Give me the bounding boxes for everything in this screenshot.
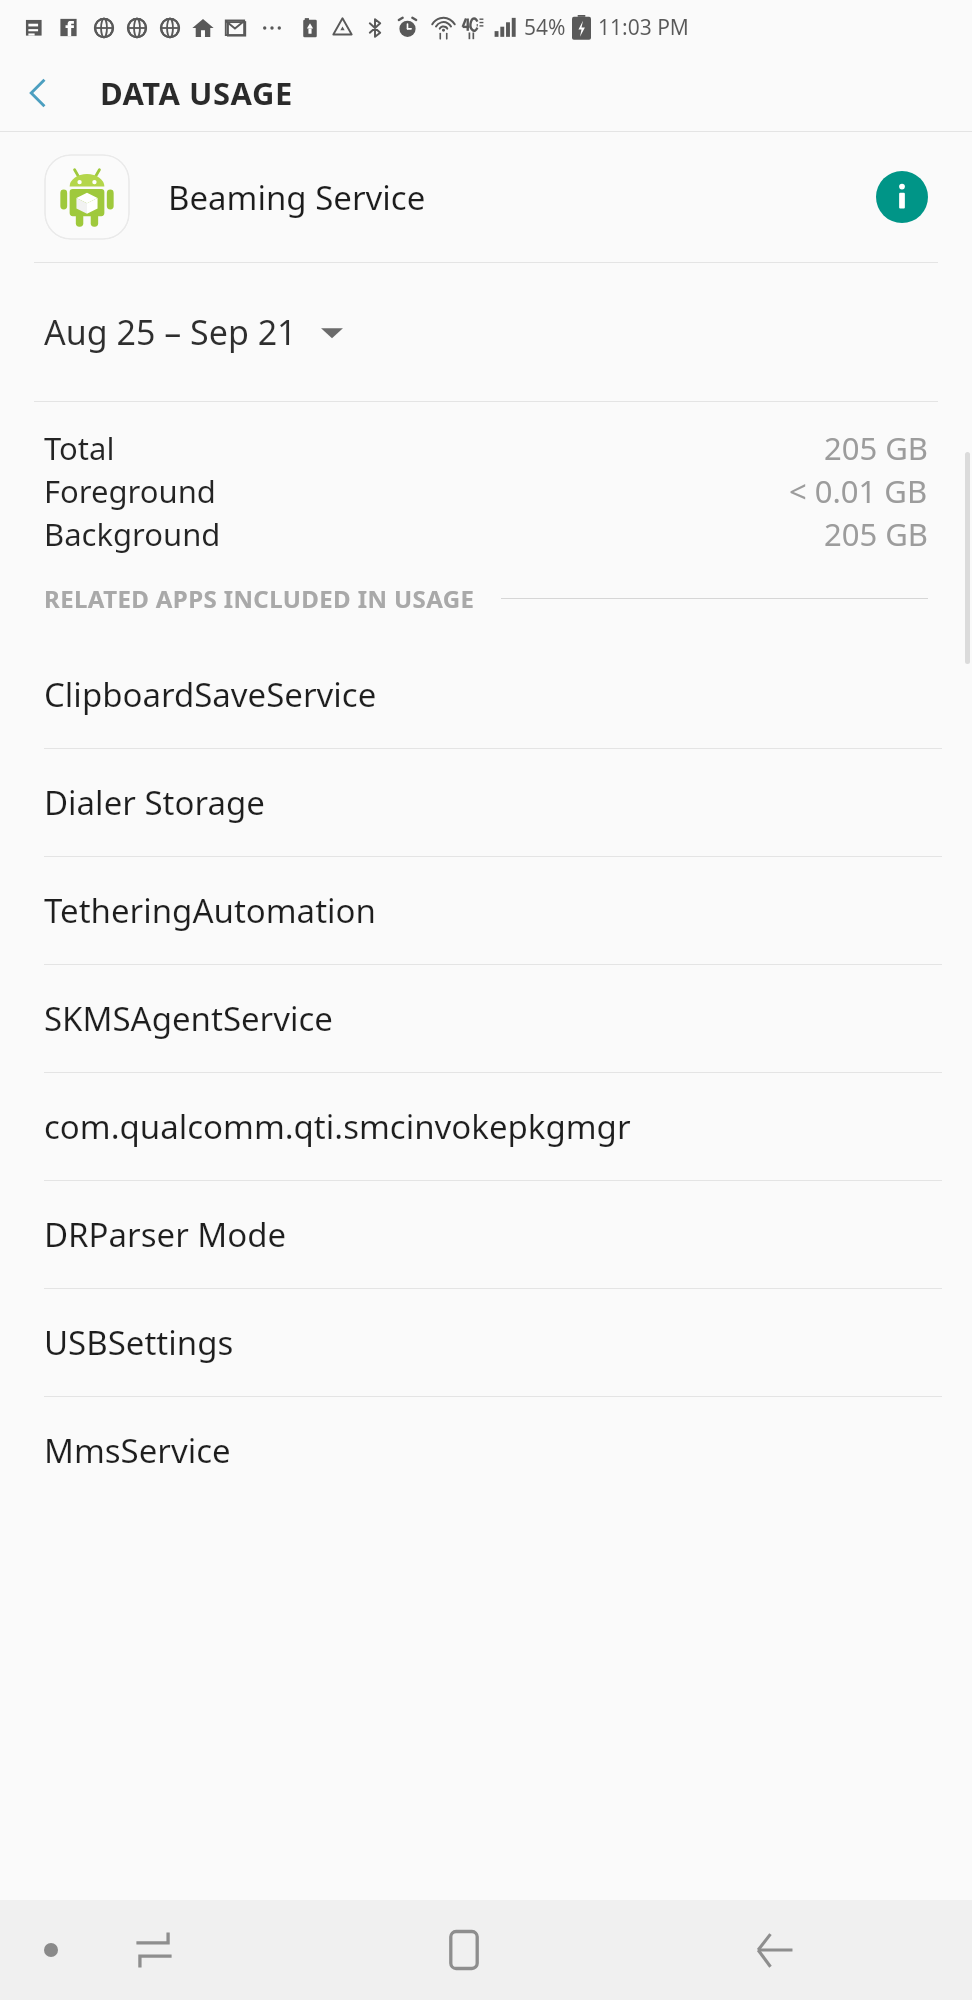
button[interactable]: Recent apps [106,1902,202,1998]
button[interactable]: USBSettings [0,1289,972,1396]
staticText: RELATED APPS INCLUDED IN USAGE [44,582,475,615]
staticText: SKMSAgentService [44,996,333,1041]
staticText: com.qualcomm.qti.smcinvokepkgmgr [44,1104,631,1149]
staticText: DATA USAGE [100,72,293,114]
button[interactable]: TetheringAutomation [0,857,972,964]
staticText: Beaming Service [168,175,426,220]
staticText: USBSettings [44,1320,234,1365]
button[interactable]: Back [726,1902,822,1998]
button[interactable]: SKMSAgentService [0,965,972,1072]
button[interactable]: Home [416,1902,512,1998]
staticText: Aug 25 – Sep 21 [44,309,297,355]
button[interactable]: ClipboardSaveService [0,641,972,748]
button[interactable]: com.qualcomm.qti.smcinvokepkgmgr [0,1073,972,1180]
button[interactable]: MmsService [0,1397,972,1504]
staticText: DRParser Mode [44,1212,287,1257]
staticText: 54% [524,13,566,42]
staticText: 205 GB [824,513,928,555]
staticText: Background [44,513,221,555]
staticText: Foreground [44,470,216,512]
staticText: < 0.01 GB [789,470,928,512]
button[interactable]: DRParser Mode [0,1181,972,1288]
staticText: Dialer Storage [44,780,265,825]
staticText: ClipboardSaveService [44,672,377,717]
staticText: MmsService [44,1428,231,1473]
staticText: Total [44,427,115,469]
staticText: 11:03 PM [598,13,689,42]
button[interactable]: Beaming Service [0,132,972,262]
button[interactable]: Dialer Storage [0,749,972,856]
button[interactable]: App info [876,171,928,223]
staticText: 205 GB [824,427,928,469]
button[interactable]: Aug 25 – Sep 21 [0,263,972,401]
staticText: TetheringAutomation [44,888,376,933]
button[interactable]: Back [0,55,76,131]
